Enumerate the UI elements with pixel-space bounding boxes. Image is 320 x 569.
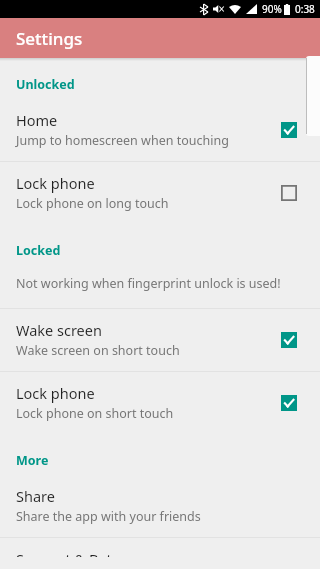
staticText: 90% [262,2,282,16]
button[interactable]: Support & Beta [0,538,320,569]
staticText: Jump to homescreen when touching [16,132,229,149]
staticText: 0:38 [295,2,315,16]
staticText: Wake screen on short touch [16,342,180,359]
staticText: Support & Beta [16,549,120,557]
button[interactable]: Unchecked [272,176,306,210]
staticText: Wake screen [16,320,102,340]
button[interactable]: Lock phone [0,372,320,434]
staticText: Lock phone on short touch [16,405,174,422]
staticText: Unlocked [16,76,75,93]
staticText: Share the app with your friends [16,508,201,525]
staticText: Locked [16,242,61,259]
staticText: Lock phone on long touch [16,195,169,212]
staticText: Not working when fingerprint unlock is u… [16,275,281,292]
staticText: More [16,452,49,469]
button[interactable]: Checked [272,386,306,420]
button[interactable]: Checked [272,113,306,147]
button[interactable]: Share [0,475,320,537]
staticText: Lock phone [16,173,95,193]
button[interactable]: Home [0,99,320,161]
button[interactable]: Checked [272,323,306,357]
staticText: Settings [16,27,83,50]
staticText: Home [16,110,58,130]
button[interactable]: Lock phone [0,162,320,224]
staticText: Share [16,486,55,506]
button[interactable]: Wake screen [0,309,320,371]
staticText: Lock phone [16,383,95,403]
